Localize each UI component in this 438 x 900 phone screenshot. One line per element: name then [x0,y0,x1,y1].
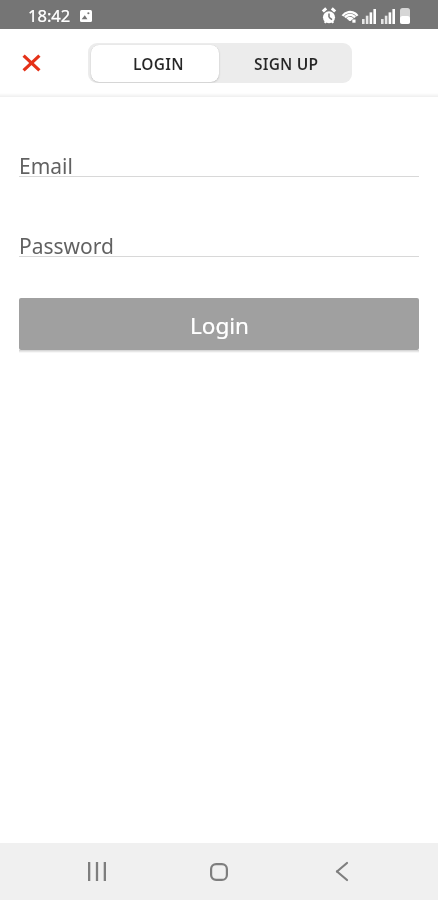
button[interactable]: SIGN UP [220,43,352,83]
button[interactable]: LOGIN [91,45,219,82]
staticText: 18:42 [28,4,71,26]
staticText: Email [19,152,73,177]
button[interactable]: Back [312,843,372,900]
button[interactable]: Recents [67,843,127,900]
button[interactable]: Home [189,843,249,900]
button[interactable]: Close [13,45,49,81]
staticText: Password [19,232,114,257]
button[interactable]: Login [19,298,419,350]
button[interactable]: Email [0,152,438,177]
button[interactable]: Password [0,232,438,257]
staticText: SIGN UP [254,53,319,74]
staticText: LOGIN [133,53,184,74]
staticText: Login [190,310,249,341]
